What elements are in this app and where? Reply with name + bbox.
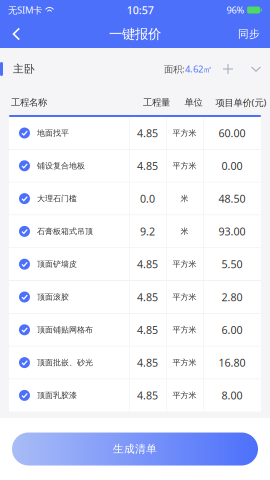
staticText: 4.85 — [137, 323, 158, 337]
staticText: 单位 — [184, 97, 202, 108]
button[interactable]: 顶面批嵌、砂光 — [9, 347, 261, 379]
staticText: 无SIM卡 — [8, 4, 42, 16]
button[interactable]: 顶面铺贴网格布 — [9, 314, 261, 346]
staticText: 米 — [180, 226, 188, 236]
button[interactable]: 铺设复合地板 — [9, 150, 261, 182]
staticText: 工程量 — [143, 97, 170, 108]
staticText: 60.00 — [218, 126, 245, 140]
staticText: 2.80 — [221, 290, 242, 304]
staticText: 8.00 — [221, 388, 242, 402]
button[interactable]: 顶面滚胶 — [9, 281, 261, 313]
staticText: 铺设复合地板 — [37, 161, 85, 171]
staticText: 米 — [180, 194, 188, 203]
staticText: 工程名称 — [11, 97, 47, 108]
staticText: 顶面铲墙皮 — [37, 259, 77, 269]
staticText: 主卧 — [13, 62, 35, 75]
staticText: 96% — [227, 4, 245, 16]
staticText: 4.62㎡ — [185, 63, 212, 75]
staticText: 平方米 — [172, 128, 196, 138]
staticText: 一键报价 — [109, 26, 161, 42]
staticText: 顶面批嵌、砂光 — [37, 358, 93, 367]
staticText: 顶面乳胶漆 — [37, 390, 77, 400]
staticText: 93.00 — [218, 224, 245, 238]
staticText: 4.85 — [137, 355, 158, 370]
staticText: 0.00 — [221, 159, 242, 173]
staticText: 平方米 — [172, 390, 196, 400]
staticText: 4.85 — [137, 126, 158, 140]
staticText: 9.2 — [140, 224, 155, 238]
staticText: 6.00 — [221, 323, 242, 337]
staticText: 项目单价(元) — [215, 96, 266, 109]
staticText: 面积: — [164, 63, 185, 75]
staticText: 0.0 — [140, 191, 155, 206]
button[interactable]: 添加项目 — [212, 55, 244, 83]
staticText: 平方米 — [172, 358, 196, 367]
staticText: 石膏板箱式吊顶 — [37, 226, 93, 236]
button[interactable]: 大理石门槛 — [9, 183, 261, 215]
staticText: 同步 — [238, 27, 260, 40]
button[interactable]: 顶面乳胶漆 — [9, 379, 261, 411]
button[interactable]: 同步 — [226, 20, 270, 47]
button[interactable]: 生成清单 — [12, 432, 258, 465]
staticText: 大理石门槛 — [37, 194, 77, 203]
button[interactable]: 石膏板箱式吊顶 — [9, 215, 261, 247]
button[interactable]: 顶面铲墙皮 — [9, 248, 261, 280]
staticText: 顶面滚胶 — [37, 292, 69, 302]
staticText: 生成清单 — [113, 442, 157, 455]
button[interactable]: 收起 — [244, 55, 270, 83]
staticText: 5.50 — [221, 257, 242, 271]
staticText: 地面找平 — [37, 128, 69, 138]
staticText: 4.85 — [137, 257, 158, 271]
staticText: 平方米 — [172, 325, 196, 335]
staticText: 4.85 — [137, 388, 158, 402]
button[interactable]: 地面找平 — [9, 117, 261, 149]
staticText: 16.80 — [218, 355, 245, 370]
staticText: 平方米 — [172, 259, 196, 269]
staticText: 顶面铺贴网格布 — [37, 325, 93, 335]
staticText: 48.50 — [218, 191, 245, 206]
button[interactable]: 返回 — [0, 21, 33, 46]
staticText: 10:57 — [127, 3, 154, 17]
staticText: 平方米 — [172, 161, 196, 171]
staticText: 4.85 — [137, 290, 158, 304]
staticText: 4.85 — [137, 159, 158, 173]
staticText: 平方米 — [172, 292, 196, 302]
